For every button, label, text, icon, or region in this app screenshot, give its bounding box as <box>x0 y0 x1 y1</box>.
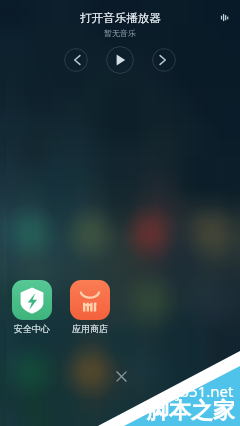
button[interactable]: Previous <box>64 48 88 72</box>
staticText: 应用商店 <box>72 323 108 334</box>
staticText: 安全中心 <box>14 323 50 334</box>
button[interactable]: 安全中心 <box>3 280 61 334</box>
button[interactable]: Play <box>106 46 134 74</box>
staticText: jb51.net <box>176 381 234 401</box>
button[interactable]: Sound output <box>217 10 231 24</box>
staticText: 脚本之家 <box>147 397 235 425</box>
button[interactable]: Next <box>152 48 176 72</box>
button[interactable]: Close <box>114 369 129 384</box>
button[interactable]: 应用商店 <box>61 280 119 334</box>
staticText: 暂无音乐 <box>104 28 136 38</box>
staticText: 打开音乐播放器 <box>80 11 161 25</box>
